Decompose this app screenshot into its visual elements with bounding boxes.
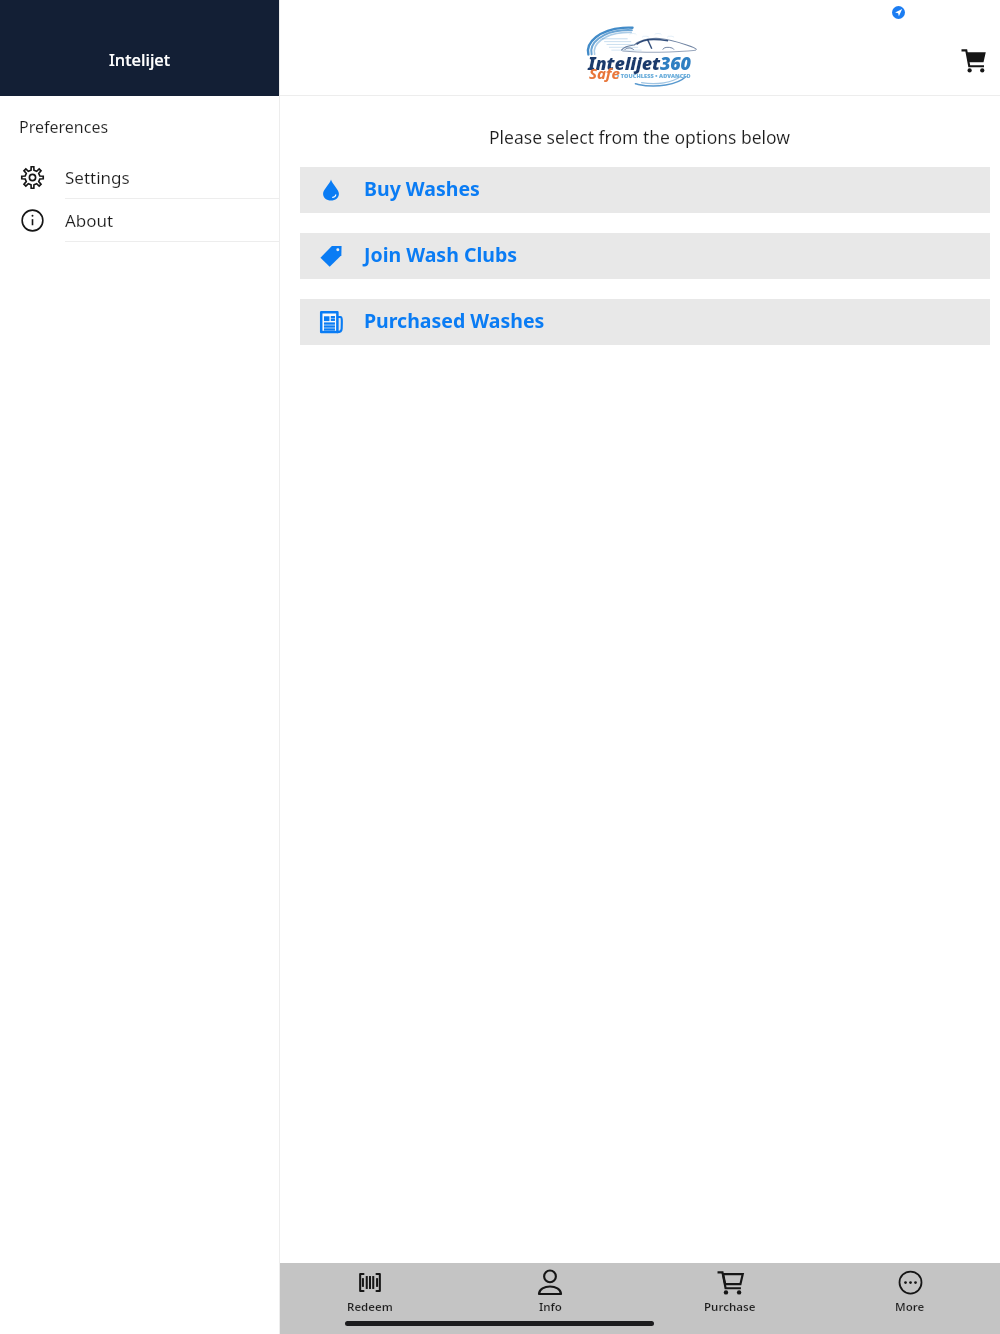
staticText: Please select from the options below — [489, 125, 791, 149]
button[interactable]: Info — [460, 1263, 640, 1313]
button[interactable]: About — [0, 199, 280, 242]
staticText: • TOUCHLESS • ADVANCED — [617, 72, 691, 79]
staticText: Safe — [589, 63, 620, 83]
button[interactable]: Buy Washes — [300, 167, 990, 213]
button[interactable]: Purchased Washes — [300, 299, 990, 345]
staticText: Intelijet — [109, 48, 171, 70]
staticText: More — [895, 1299, 925, 1315]
button[interactable]: Cart — [953, 39, 993, 81]
button[interactable]: Settings — [0, 156, 280, 199]
button[interactable]: Redeem — [280, 1263, 460, 1313]
staticText: Preferences — [19, 116, 109, 138]
staticText: 360 — [660, 51, 691, 76]
staticText: Purchase — [704, 1299, 756, 1315]
staticText: Buy Washes — [364, 175, 480, 202]
staticText: Purchased Washes — [364, 307, 545, 334]
staticText: Join Wash Clubs — [364, 241, 518, 268]
button[interactable]: Purchase — [640, 1263, 820, 1313]
button[interactable]: Join Wash Clubs — [300, 233, 990, 279]
staticText: Redeem — [347, 1299, 393, 1315]
button[interactable]: More — [820, 1263, 1000, 1313]
staticText: About — [65, 209, 114, 232]
staticText: Info — [539, 1299, 562, 1315]
staticText: Settings — [65, 166, 130, 189]
other: Location — [892, 6, 905, 19]
staticText: Intelijet — [588, 51, 660, 76]
